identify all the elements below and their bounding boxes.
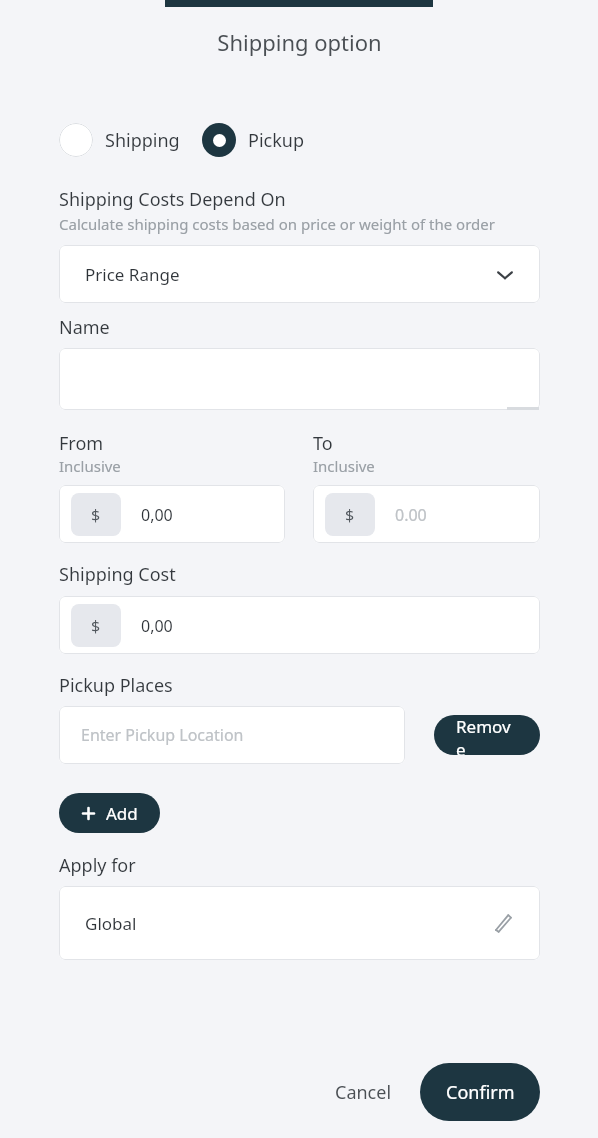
- button[interactable]: $: [313, 485, 540, 543]
- staticText: $: [91, 615, 101, 637]
- button[interactable]: Shipping: [59, 123, 184, 157]
- button[interactable]: Price Range: [59, 245, 540, 303]
- button[interactable]: Global: [59, 886, 540, 960]
- staticText: 0.00: [395, 504, 427, 526]
- staticText: 0,00: [141, 615, 173, 637]
- staticText: Enter Pickup Location: [81, 724, 244, 746]
- button[interactable]: Cancel: [319, 1068, 408, 1117]
- staticText: Shipping option: [217, 27, 382, 57]
- staticText: Shipping Costs Depend On: [59, 187, 286, 212]
- staticText: To: [313, 431, 333, 456]
- button[interactable]: Edit: [490, 910, 516, 936]
- button[interactable]: Pickup: [202, 123, 308, 157]
- staticText: Add: [106, 802, 138, 825]
- button[interactable]: Enter Pickup Location: [59, 706, 405, 764]
- staticText: Apply for: [59, 853, 136, 878]
- staticText: Inclusive: [313, 456, 375, 476]
- button[interactable]: Remove: [434, 715, 540, 755]
- staticText: Name: [59, 315, 110, 340]
- staticText: Global: [85, 912, 490, 935]
- staticText: Pickup Places: [59, 673, 173, 698]
- staticText: Shipping: [105, 128, 180, 153]
- staticText: $: [91, 504, 101, 526]
- button[interactable]: $: [59, 596, 540, 654]
- staticText: Pickup: [248, 128, 304, 153]
- staticText: Cancel: [335, 1080, 392, 1105]
- staticText: Calculate shipping costs based on price …: [59, 214, 495, 234]
- button[interactable]: Add: [59, 793, 160, 833]
- button[interactable]: [59, 348, 540, 410]
- button[interactable]: Confirm: [420, 1063, 540, 1121]
- staticText: Confirm: [446, 1080, 515, 1105]
- staticText: Shipping Cost: [59, 562, 176, 587]
- staticText: From: [59, 431, 104, 456]
- staticText: Remove: [456, 715, 518, 755]
- button[interactable]: $: [59, 485, 285, 543]
- staticText: Inclusive: [59, 456, 121, 476]
- staticText: Price Range: [85, 263, 496, 286]
- staticText: $: [345, 504, 355, 526]
- staticText: 0,00: [141, 504, 173, 526]
